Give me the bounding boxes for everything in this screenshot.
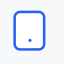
button[interactable]: Device: [8, 5, 56, 58]
